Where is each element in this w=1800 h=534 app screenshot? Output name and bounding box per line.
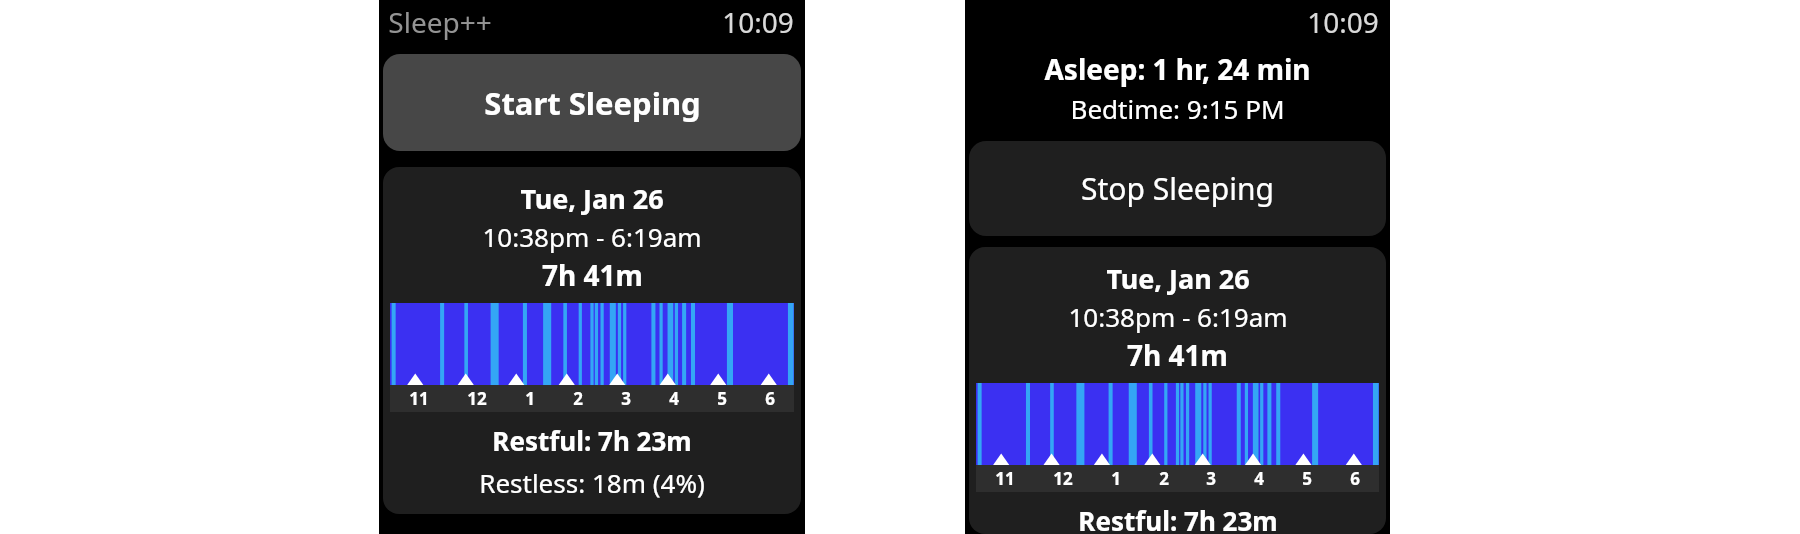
staticText: 2 bbox=[573, 387, 583, 410]
staticText: Asleep: 1 hr, 24 min bbox=[1044, 50, 1311, 88]
staticText: 5 bbox=[717, 387, 727, 410]
staticText: 10:38pm - 6:19am bbox=[1068, 299, 1288, 334]
button[interactable]: Start Sleeping bbox=[383, 54, 801, 151]
staticText: 11 bbox=[409, 387, 429, 410]
staticText: Stop Sleeping bbox=[1081, 168, 1274, 209]
staticText: Bedtime: 9:15 PM bbox=[1070, 91, 1285, 126]
staticText: 12 bbox=[467, 387, 487, 410]
staticText: Restful: 7h 23m bbox=[1078, 503, 1278, 534]
staticText: Restless: 18m (4%) bbox=[479, 465, 705, 500]
staticText: Restful: 7h 23m bbox=[492, 423, 692, 458]
staticText: 3 bbox=[621, 387, 631, 410]
button[interactable]: Tue, Jan 26 bbox=[969, 247, 1386, 534]
staticText: 10:09 bbox=[1307, 3, 1379, 41]
staticText: Tue, Jan 26 bbox=[1106, 260, 1250, 297]
staticText: 11 bbox=[995, 467, 1015, 490]
staticText: Start Sleeping bbox=[484, 82, 701, 124]
staticText: 12 bbox=[1053, 467, 1073, 490]
staticText: 3 bbox=[1206, 467, 1216, 490]
staticText: 10:09 bbox=[722, 3, 794, 41]
staticText: 6 bbox=[1350, 467, 1360, 490]
staticText: Sleep++ bbox=[388, 3, 492, 41]
button[interactable]: Stop Sleeping bbox=[969, 141, 1386, 236]
staticText: 2 bbox=[1159, 467, 1169, 490]
staticText: 7h 41m bbox=[1127, 336, 1228, 374]
staticText: 4 bbox=[1254, 467, 1264, 490]
staticText: 6 bbox=[765, 387, 775, 410]
staticText: 1 bbox=[525, 387, 535, 410]
staticText: 4 bbox=[669, 387, 679, 410]
staticText: Tue, Jan 26 bbox=[520, 180, 664, 217]
staticText: 5 bbox=[1302, 467, 1312, 490]
staticText: 10:38pm - 6:19am bbox=[482, 219, 702, 254]
staticText: 1 bbox=[1111, 467, 1121, 490]
button[interactable]: Tue, Jan 26 bbox=[383, 167, 801, 514]
staticText: 7h 41m bbox=[542, 256, 643, 294]
